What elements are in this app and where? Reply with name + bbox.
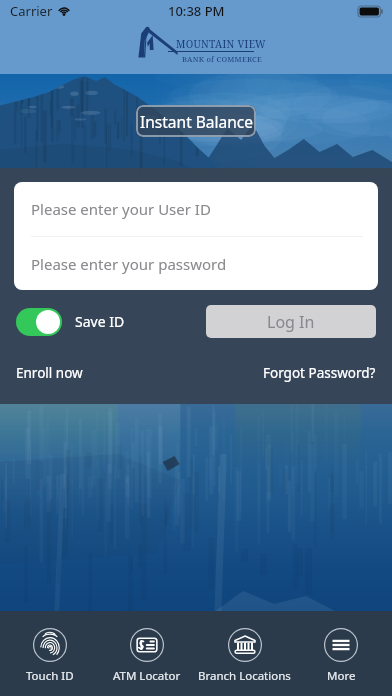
staticText: 10:38 PM [168, 2, 225, 20]
staticText: Carrier [10, 2, 53, 20]
staticText: ATM Locator [113, 668, 181, 684]
staticText: MOUNTAIN VIEW [176, 37, 266, 51]
button[interactable]: Branch Locations [196, 611, 292, 696]
staticText: Forgot Password? [263, 364, 376, 382]
staticText: Branch Locations [198, 668, 291, 684]
button[interactable] [16, 308, 62, 336]
staticText: Instant Balance [140, 111, 253, 132]
staticText: Please enter your User ID [31, 199, 211, 219]
button[interactable]: Enroll now [16, 364, 83, 382]
staticText: Enroll now [16, 364, 83, 382]
staticText: Log In [267, 311, 315, 333]
staticText: More [327, 668, 356, 684]
button[interactable]: Please enter your password [14, 237, 378, 290]
staticText: BANK of COMMERCE [182, 54, 262, 64]
button[interactable]: Forgot Password? [263, 364, 376, 382]
other: Branch Locations [228, 628, 262, 662]
button[interactable]: Touch ID [2, 611, 98, 696]
staticText: Please enter your password [31, 254, 227, 274]
button[interactable]: More [293, 611, 389, 696]
staticText: Touch ID [26, 668, 74, 684]
staticText: Save ID [75, 312, 125, 331]
button[interactable]: Please enter your User ID [14, 182, 378, 236]
other: ATM Locator [130, 628, 164, 662]
button[interactable]: Log In [206, 305, 376, 338]
button[interactable]: Instant Balance [136, 105, 256, 137]
button[interactable]: ATM Locator [99, 611, 195, 696]
other: More [324, 628, 358, 662]
other: Touch ID [33, 628, 67, 662]
